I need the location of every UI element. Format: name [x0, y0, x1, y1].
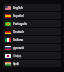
staticText: русский: [13, 46, 24, 50]
staticText: 日本語: [13, 54, 22, 58]
button[interactable]: Português: [3, 20, 61, 27]
staticText: हिन्दी: [13, 62, 19, 66]
button[interactable]: русский: [3, 44, 61, 51]
staticText: English: [13, 6, 23, 10]
button[interactable]: 日本語: [3, 52, 61, 59]
staticText: Italiano: [13, 38, 24, 42]
staticText: Português: [13, 22, 27, 26]
button[interactable]: English: [3, 4, 61, 11]
button[interactable]: Italiano: [3, 36, 61, 43]
staticText: Español: [13, 14, 24, 18]
button[interactable]: हिन्दी: [3, 60, 61, 67]
button[interactable]: Español: [3, 12, 61, 19]
staticText: Deutsch: [13, 30, 24, 34]
button[interactable]: Deutsch: [3, 28, 61, 35]
